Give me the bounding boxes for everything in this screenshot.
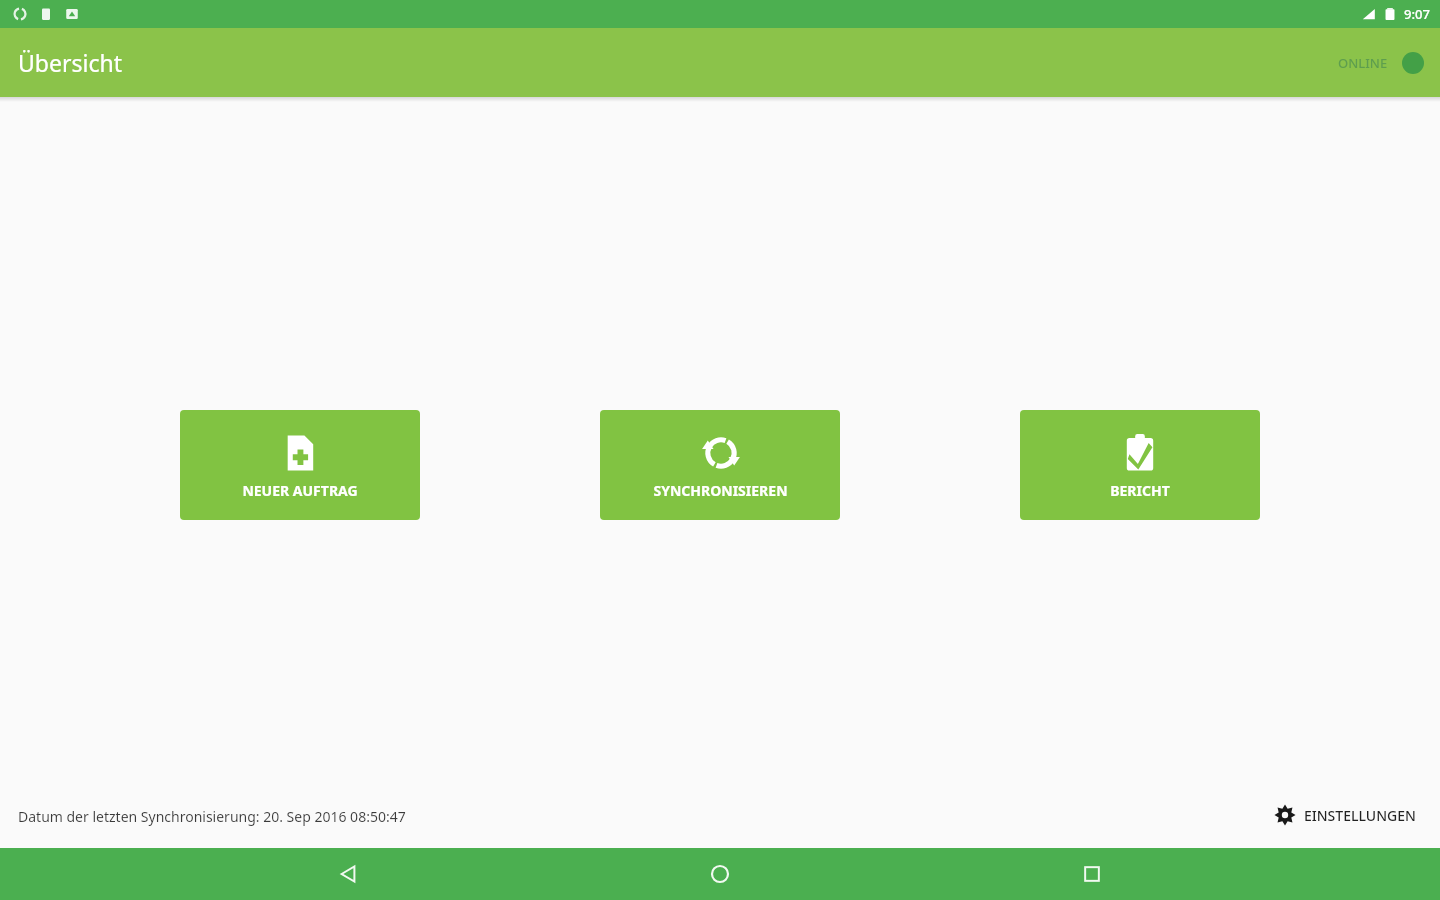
staticText: NEUER AUFTRAG [242,481,358,500]
button[interactable]: Recents [1068,850,1116,898]
staticText: BERICHT [1110,481,1170,500]
staticText: 9:07 [1404,5,1430,23]
button[interactable]: Home [696,850,744,898]
staticText: Datum der letzten Synchronisierung: 20. … [18,807,406,826]
button[interactable]: SYNCHRONISIEREN [600,410,840,520]
staticText: EINSTELLUNGEN [1304,806,1416,825]
staticText: ONLINE [1338,54,1388,72]
staticText: Übersicht [18,47,122,78]
button[interactable]: BERICHT [1020,410,1260,520]
button[interactable]: Back [324,850,372,898]
staticText: SYNCHRONISIEREN [653,481,788,500]
button[interactable]: EINSTELLUNGEN [1268,798,1422,832]
button[interactable]: NEUER AUFTRAG [180,410,420,520]
